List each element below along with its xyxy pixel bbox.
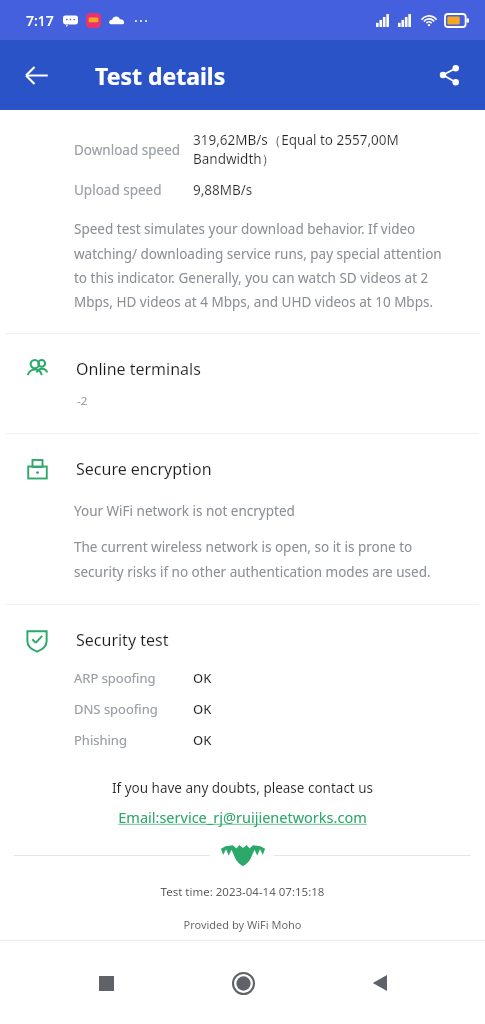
button[interactable]: Back <box>10 49 62 101</box>
staticText: OK <box>193 731 212 749</box>
staticText: ARP spoofing <box>74 669 193 687</box>
button[interactable]: Secure encryption <box>0 434 485 484</box>
staticText: Security test <box>76 629 169 651</box>
staticText: Test time: 2023-04-14 07:15:18 <box>0 884 485 900</box>
staticText: Secure encryption <box>76 458 212 480</box>
staticText: DNS spoofing <box>74 700 193 718</box>
staticText: OK <box>193 700 212 718</box>
staticText: Online terminals <box>76 358 201 380</box>
staticText: Test details <box>95 60 226 91</box>
button[interactable]: Security test <box>0 605 485 655</box>
button[interactable]: Online terminals <box>0 334 485 384</box>
staticText: If you have any doubts, please contact u… <box>0 779 485 797</box>
button[interactable]: Recents <box>76 953 136 1013</box>
staticText: Provided by WiFi Moho <box>0 917 485 932</box>
staticText: OK <box>193 669 212 687</box>
staticText: -2 <box>77 393 88 409</box>
staticText: Upload speed <box>74 181 193 199</box>
button[interactable]: Email:service_rj@ruijienetworks.com <box>0 807 485 827</box>
staticText: 7:17 <box>26 11 54 30</box>
button[interactable]: Back <box>349 953 409 1013</box>
staticText: 319,62MB/s（Equal to 2557,00M Bandwidth） <box>193 131 473 168</box>
staticText: Download speed <box>74 141 193 159</box>
staticText: 9,88MB/s <box>193 181 253 199</box>
staticText: Email:service_rj@ruijienetworks.com <box>118 807 367 827</box>
button[interactable]: Home <box>213 953 273 1013</box>
staticText: Your WiFi network is not encrypted <box>74 502 295 520</box>
button[interactable]: Share <box>423 49 475 101</box>
staticText: The current wireless network is open, so… <box>74 538 461 581</box>
staticText: Speed test simulates your download behav… <box>74 220 453 311</box>
staticText: Phishing <box>74 731 193 749</box>
